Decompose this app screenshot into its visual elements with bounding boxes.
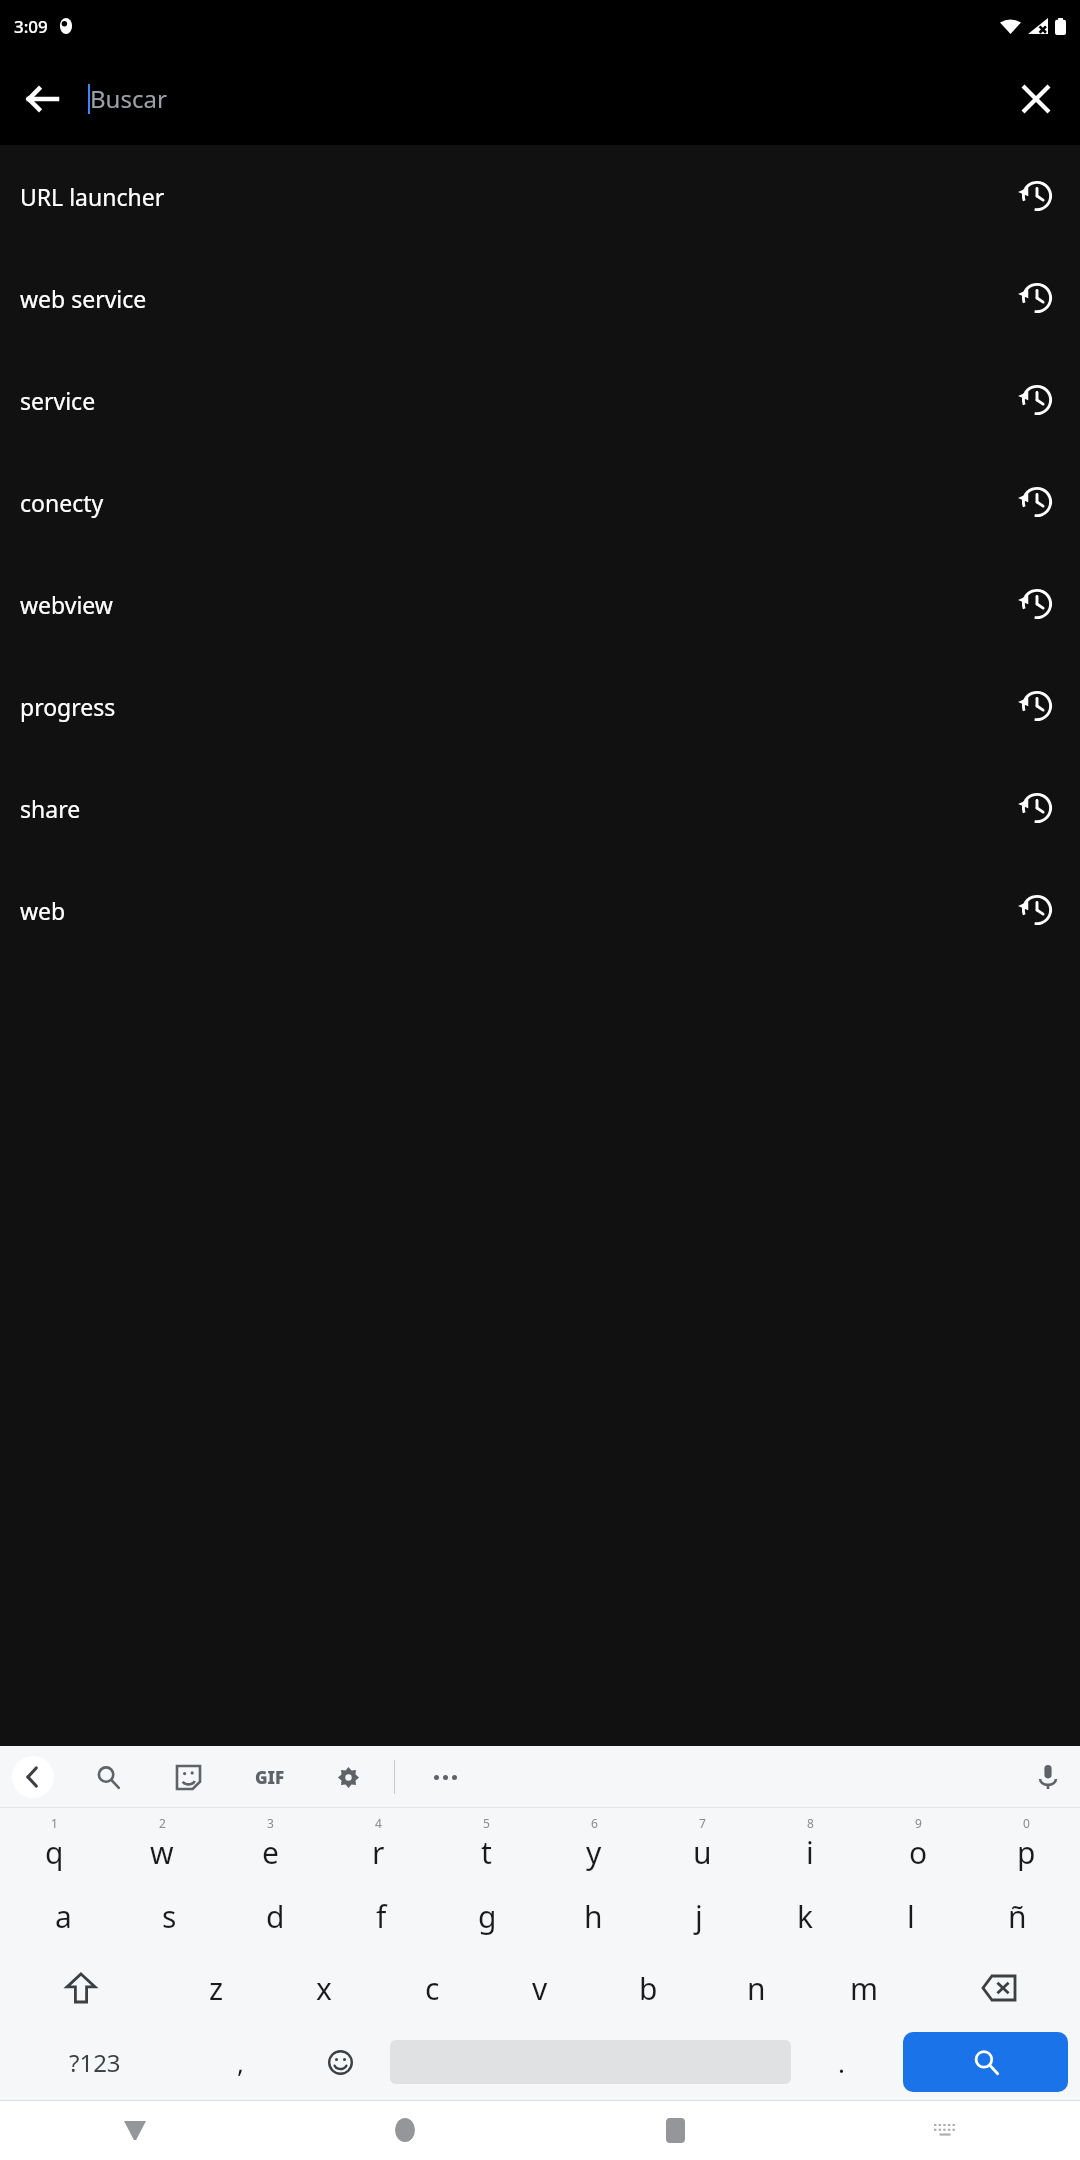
button[interactable]: 6: [540, 1808, 648, 1880]
button[interactable]: a: [10, 1880, 116, 1952]
staticText: q: [45, 1832, 64, 1873]
button[interactable]: conecty: [0, 451, 1080, 553]
button[interactable]: 3: [216, 1808, 324, 1880]
staticText: 8: [807, 1815, 814, 1831]
button[interactable]: Recent apps: [540, 2100, 810, 2160]
button[interactable]: Backspace: [918, 1952, 1080, 2024]
staticText: t: [481, 1832, 492, 1873]
button[interactable]: service: [0, 349, 1080, 451]
button[interactable]: h: [540, 1880, 646, 1952]
button[interactable]: 2: [108, 1808, 216, 1880]
staticText: conecty: [20, 487, 104, 518]
staticText: 3: [267, 1815, 274, 1831]
staticText: 7: [699, 1815, 706, 1831]
button[interactable]: d: [222, 1880, 328, 1952]
button[interactable]: Clear: [1004, 67, 1068, 131]
button[interactable]: m: [810, 1952, 918, 2024]
button[interactable]: Home: [270, 2100, 540, 2160]
button[interactable]: ñ: [964, 1880, 1070, 1952]
staticText: y: [586, 1832, 602, 1873]
staticText: web: [20, 895, 66, 926]
button[interactable]: v: [486, 1952, 594, 2024]
button[interactable]: Voice input: [1026, 1755, 1070, 1799]
button[interactable]: web: [0, 859, 1080, 961]
staticText: service: [20, 385, 96, 416]
button[interactable]: 5: [432, 1808, 540, 1880]
button[interactable]: share: [0, 757, 1080, 859]
button[interactable]: x: [270, 1952, 378, 2024]
button[interactable]: b: [594, 1952, 702, 2024]
staticText: progress: [20, 691, 116, 722]
button[interactable]: 7: [648, 1808, 756, 1880]
staticText: ñ: [1008, 1896, 1027, 1937]
staticText: webview: [20, 589, 113, 620]
button[interactable]: 8: [756, 1808, 864, 1880]
button[interactable]: Search: [903, 2032, 1068, 2092]
button[interactable]: ?123: [0, 2024, 190, 2100]
button[interactable]: Search: [88, 1757, 128, 1797]
button[interactable]: Back: [10, 67, 74, 131]
button[interactable]: g: [434, 1880, 540, 1952]
staticText: j: [695, 1896, 703, 1937]
staticText: l: [907, 1896, 915, 1937]
button[interactable]: s: [116, 1880, 222, 1952]
button[interactable]: Switch keyboard: [810, 2100, 1080, 2160]
staticText: 1: [51, 1815, 58, 1831]
staticText: .: [838, 2045, 845, 2080]
staticText: d: [266, 1896, 285, 1937]
staticText: o: [909, 1832, 928, 1873]
button[interactable]: URL launcher: [0, 145, 1080, 247]
staticText: c: [425, 1968, 440, 2009]
button[interactable]: More: [425, 1757, 465, 1797]
staticText: w: [150, 1832, 174, 1873]
staticText: Buscar: [90, 82, 167, 115]
button[interactable]: Settings: [328, 1757, 368, 1797]
staticText: web service: [20, 283, 147, 314]
staticText: m: [850, 1968, 879, 2009]
staticText: e: [262, 1832, 279, 1873]
staticText: 4: [375, 1815, 382, 1831]
button[interactable]: n: [702, 1952, 810, 2024]
button[interactable]: web service: [0, 247, 1080, 349]
staticText: 0: [1023, 1815, 1030, 1831]
staticText: z: [209, 1968, 224, 2009]
button[interactable]: z: [162, 1952, 270, 2024]
staticText: 6: [591, 1815, 598, 1831]
staticText: n: [747, 1968, 766, 2009]
button[interactable]: 4: [324, 1808, 432, 1880]
button[interactable]: 9: [864, 1808, 972, 1880]
button[interactable]: GIF: [248, 1755, 292, 1799]
button[interactable]: j: [646, 1880, 752, 1952]
button[interactable]: Stickers: [168, 1757, 208, 1797]
staticText: f: [376, 1896, 387, 1937]
staticText: ?123: [69, 2046, 121, 2079]
staticText: 5: [483, 1815, 490, 1831]
button[interactable]: Shift: [0, 1952, 162, 2024]
button[interactable]: k: [752, 1880, 858, 1952]
button[interactable]: Emoji: [290, 2024, 390, 2100]
button[interactable]: Back: [0, 2100, 270, 2160]
button[interactable]: f: [328, 1880, 434, 1952]
button[interactable]: .: [791, 2024, 891, 2100]
staticText: h: [584, 1896, 603, 1937]
button[interactable]: c: [378, 1952, 486, 2024]
button[interactable]: l: [858, 1880, 964, 1952]
staticText: v: [532, 1968, 548, 2009]
staticText: i: [806, 1832, 814, 1873]
staticText: x: [316, 1968, 332, 2009]
button[interactable]: Collapse toolbar: [12, 1756, 54, 1798]
staticText: GIF: [255, 1766, 285, 1789]
staticText: 2: [159, 1815, 166, 1831]
button[interactable]: 0: [972, 1808, 1080, 1880]
button[interactable]: 1: [0, 1808, 108, 1880]
staticText: g: [478, 1896, 497, 1937]
button[interactable]: progress: [0, 655, 1080, 757]
staticText: s: [162, 1896, 177, 1937]
button[interactable]: ,: [190, 2024, 290, 2100]
staticText: p: [1017, 1832, 1036, 1873]
button[interactable]: webview: [0, 553, 1080, 655]
staticText: b: [639, 1968, 658, 2009]
staticText: ,: [237, 2045, 244, 2080]
staticText: URL launcher: [20, 181, 165, 212]
